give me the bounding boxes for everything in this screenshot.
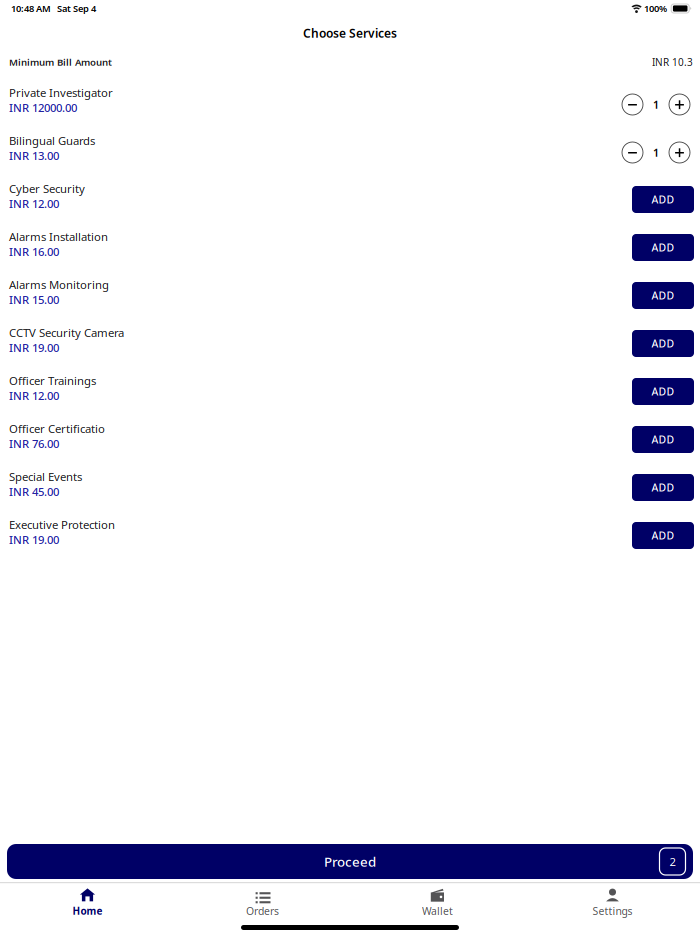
button[interactable]: Decrease quantity [622,142,643,163]
staticText: INR 45.00 [9,484,59,499]
button[interactable]: ADD [632,426,694,453]
staticText: Private Investigator [9,85,113,100]
button[interactable]: Proceed [7,844,693,879]
staticText: CCTV Security Camera [9,325,124,340]
staticText: INR 16.00 [9,244,59,259]
staticText: INR 19.00 [9,532,59,547]
staticText: ADD [651,240,674,255]
button[interactable]: ADD [632,474,694,501]
staticText: ADD [651,432,674,447]
staticText: INR 13.00 [9,148,59,163]
staticText: ADD [651,384,674,399]
staticText: INR 10.3 [652,55,693,69]
staticText: Orders [246,904,279,918]
button[interactable]: ADD [632,330,694,357]
staticText: INR 12.00 [9,388,59,403]
staticText: Home [72,904,102,918]
button[interactable]: Increase quantity [669,142,690,163]
button[interactable]: ADD [632,234,694,261]
staticText: ADD [651,528,674,543]
staticText: 1 [653,145,659,160]
staticText: Wallet [422,904,453,918]
staticText: ADD [651,336,674,351]
staticText: Alarms Installation [9,229,108,244]
staticText: ADD [651,288,674,303]
staticText: Settings [592,904,632,918]
staticText: 1 [653,97,659,112]
staticText: Minimum Bill Amount [9,55,112,69]
button[interactable]: ADD [632,522,694,549]
staticText: 2 [669,854,675,869]
staticText: INR 19.00 [9,340,59,355]
button[interactable]: Home [0,882,175,921]
button[interactable]: ADD [632,282,694,309]
staticText: Alarms Monitoring [9,277,109,292]
staticText: INR 12.00 [9,196,59,211]
staticText: ADD [651,192,674,207]
button[interactable]: ADD [632,186,694,213]
button[interactable]: Increase quantity [669,94,690,115]
staticText: Cyber Security [9,181,85,196]
staticText: Sat Sep 4 [51,2,96,15]
staticText: INR 15.00 [9,292,59,307]
staticText: Officer Certificatio [9,421,105,436]
staticText: Special Events [9,469,82,484]
staticText: 10:48 AM [11,2,51,15]
staticText: INR 12000.00 [9,100,77,115]
button[interactable]: ADD [632,378,694,405]
button[interactable]: Wallet [350,882,525,921]
button[interactable]: Orders [175,882,350,921]
staticText: Bilingual Guards [9,133,95,148]
staticText: Officer Trainings [9,373,96,388]
staticText: ADD [651,480,674,495]
staticText: Choose Services [303,25,397,41]
button[interactable]: Decrease quantity [622,94,643,115]
staticText: Executive Protection [9,517,115,532]
staticText: Proceed [324,852,376,871]
button[interactable]: Settings [525,882,700,921]
staticText: INR 76.00 [9,436,59,451]
staticText: 100% [642,2,671,15]
